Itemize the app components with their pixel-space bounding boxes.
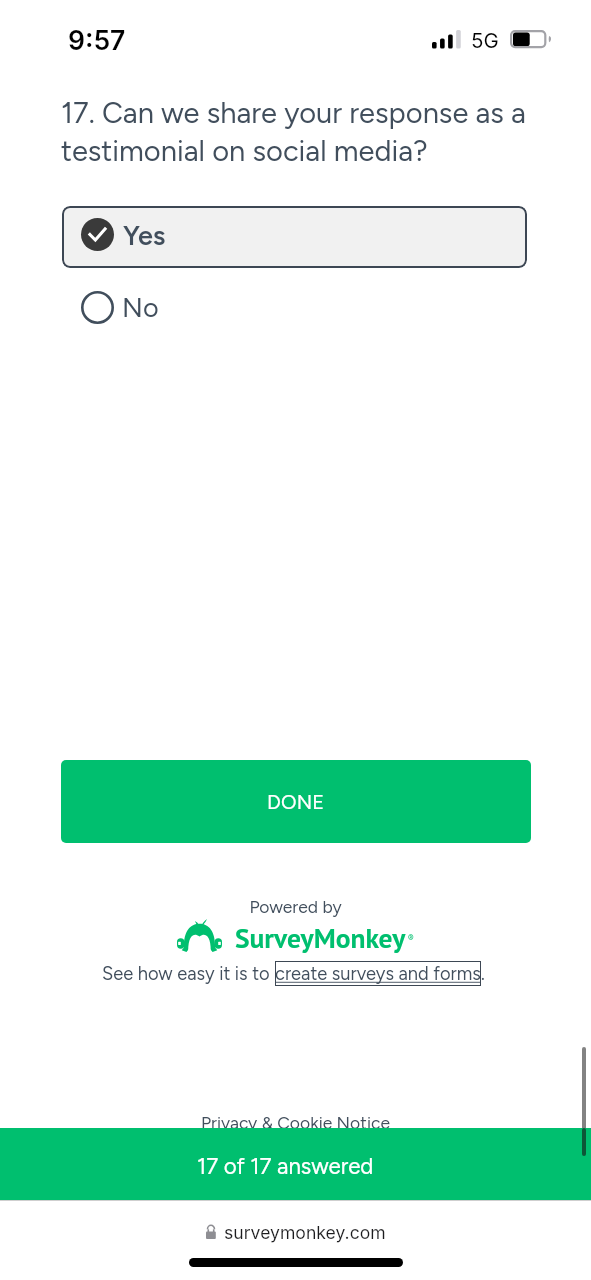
button[interactable]: 17 of 17 answered	[0, 1128, 591, 1200]
staticText: surveymonkey.com	[224, 1222, 386, 1243]
button[interactable]: Yes	[62, 206, 527, 268]
button[interactable]: SurveyMonkey	[177, 920, 412, 956]
staticText: ®	[408, 932, 414, 943]
staticText: 17 of 17 answered	[197, 1153, 374, 1180]
button[interactable]: Privacy & Cookie Notice	[0, 1112, 591, 1133]
button[interactable]: No	[62, 281, 527, 333]
staticText: 17. Can we share your response as a test…	[61, 95, 537, 169]
staticText: No	[122, 291, 159, 323]
button[interactable]: surveymonkey.com	[0, 1216, 591, 1248]
staticText: 9:57	[68, 24, 126, 56]
staticText: .	[481, 963, 485, 985]
staticText: See how easy it is to	[102, 963, 275, 985]
staticText: DONE	[267, 790, 325, 814]
staticText: Powered by	[0, 896, 591, 917]
staticText: 5G	[471, 28, 499, 53]
button[interactable]: DONE	[61, 760, 531, 843]
staticText: create surveys and forms	[275, 963, 481, 985]
staticText: SurveyMonkey	[235, 920, 406, 956]
button[interactable]: create surveys and forms	[275, 961, 481, 986]
staticText: Yes	[123, 219, 166, 251]
